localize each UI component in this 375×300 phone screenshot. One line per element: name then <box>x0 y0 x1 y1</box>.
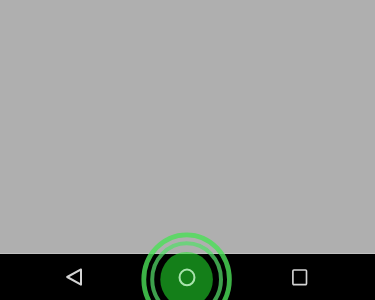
button[interactable]: Home <box>163 254 211 300</box>
button[interactable]: Recent apps <box>276 254 324 300</box>
button[interactable]: Back <box>51 254 99 300</box>
